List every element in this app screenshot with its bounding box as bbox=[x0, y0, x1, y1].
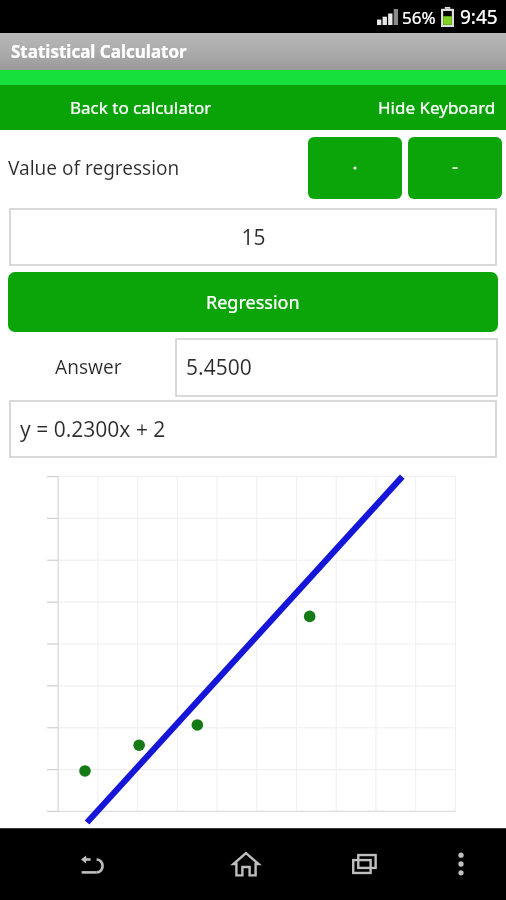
button[interactable]: Minus sign bbox=[408, 137, 502, 199]
staticText: 56% bbox=[402, 6, 436, 29]
staticText: 9:45 bbox=[460, 4, 498, 30]
staticText: Value of regression bbox=[8, 155, 180, 181]
staticText: Hide Keyboard bbox=[378, 96, 496, 119]
button[interactable]: Hide Keyboard bbox=[368, 90, 506, 125]
button[interactable]: y = 0.2300x + 2 bbox=[10, 401, 496, 457]
staticText: Back to calculator bbox=[70, 96, 212, 119]
button[interactable]: 5.4500 bbox=[176, 339, 497, 396]
button[interactable]: 15 bbox=[10, 209, 496, 265]
staticText: Answer bbox=[55, 354, 122, 380]
staticText: 5.4500 bbox=[186, 353, 252, 382]
button[interactable]: Back bbox=[0, 828, 186, 900]
button[interactable]: More options bbox=[424, 828, 498, 900]
button[interactable]: Home bbox=[186, 828, 305, 900]
staticText: Regression bbox=[206, 290, 300, 315]
staticText: 15 bbox=[241, 223, 266, 252]
button[interactable]: Back to calculator bbox=[60, 90, 222, 125]
button[interactable]: Recent apps bbox=[305, 828, 424, 900]
staticText: Statistical Calculator bbox=[11, 40, 187, 63]
button[interactable]: Regression bbox=[8, 272, 498, 332]
button[interactable]: Decimal point bbox=[308, 137, 402, 199]
staticText: y = 0.2300x + 2 bbox=[20, 415, 166, 444]
